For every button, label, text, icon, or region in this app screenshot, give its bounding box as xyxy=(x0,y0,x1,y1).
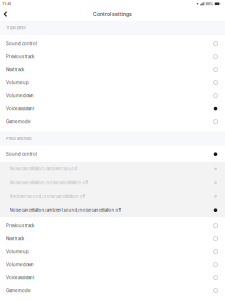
button[interactable]: Voice assistant xyxy=(0,102,225,115)
button[interactable]: Game mode xyxy=(0,115,225,128)
staticText: Control settings xyxy=(93,11,132,17)
button[interactable]: Volume down xyxy=(0,258,225,271)
button[interactable]: Next track xyxy=(0,63,225,76)
button[interactable]: Noise cancellation/ambient sound xyxy=(0,162,225,176)
staticText: Volume down xyxy=(6,262,34,267)
button[interactable]: Game mode xyxy=(0,284,225,297)
staticText: Sound control xyxy=(6,41,37,46)
staticText: Game mode xyxy=(6,119,30,124)
staticText: Previous track xyxy=(6,223,34,228)
staticText: Volume up xyxy=(6,80,29,85)
button[interactable]: Ambient sound/noise cancellation off xyxy=(0,189,225,203)
staticText: Game mode xyxy=(6,288,30,293)
button[interactable]: Volume up xyxy=(0,76,225,89)
button[interactable]: Sound control xyxy=(0,37,225,50)
button[interactable]: Back xyxy=(0,7,11,21)
button[interactable]: Noise cancellation/ambient sound/noise c… xyxy=(0,203,225,217)
staticText: Noise cancellation/ambient sound/noise c… xyxy=(9,208,121,213)
staticText: 11:41 xyxy=(2,1,11,6)
staticText: Next track xyxy=(6,236,24,241)
staticText: Voice assistant xyxy=(6,106,34,111)
button[interactable]: Previous track xyxy=(0,50,225,63)
button[interactable]: Previous track xyxy=(0,219,225,232)
staticText: Next track xyxy=(6,67,24,72)
staticText: Press and hold xyxy=(6,136,31,141)
staticText: Noise cancellation/noise cancellation of… xyxy=(9,180,88,185)
staticText: Voice assistant xyxy=(6,275,34,280)
button[interactable]: Next track xyxy=(0,232,225,245)
staticText: Ambient sound/noise cancellation off xyxy=(9,194,85,199)
staticText: Sound control xyxy=(6,152,37,157)
button[interactable]: Noise cancellation/noise cancellation of… xyxy=(0,176,225,189)
staticText: Triple press xyxy=(6,25,26,30)
button[interactable]: Volume down xyxy=(0,89,225,102)
staticText: Volume down xyxy=(6,93,34,98)
staticText: Previous track xyxy=(6,54,34,59)
staticText: Volume up xyxy=(6,249,29,254)
staticText: Noise cancellation/ambient sound xyxy=(9,166,77,171)
button[interactable]: Voice assistant xyxy=(0,271,225,284)
staticText: 69% xyxy=(205,1,213,6)
button[interactable]: Sound control xyxy=(0,148,225,161)
button[interactable]: Volume up xyxy=(0,245,225,258)
